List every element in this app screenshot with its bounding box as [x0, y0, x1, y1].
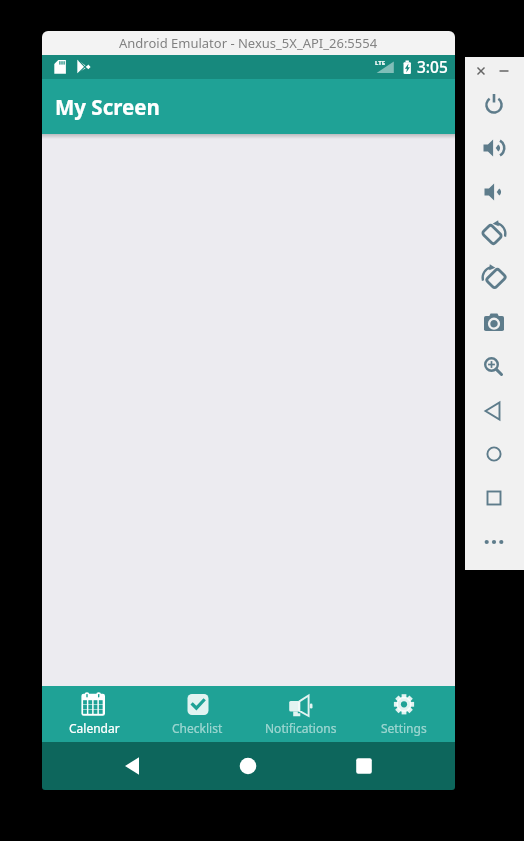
- button[interactable]: [476, 174, 512, 210]
- staticText: Calendar: [69, 720, 120, 736]
- button[interactable]: [476, 130, 512, 166]
- staticText: My Screen: [55, 93, 160, 121]
- button[interactable]: [476, 480, 512, 516]
- button[interactable]: [476, 524, 512, 560]
- button[interactable]: [340, 742, 388, 790]
- button[interactable]: [476, 393, 512, 429]
- staticText: Settings: [381, 720, 427, 736]
- button[interactable]: [108, 742, 156, 790]
- staticText: Notifications: [265, 720, 337, 736]
- staticText: LTE: [375, 59, 386, 67]
- button[interactable]: [497, 64, 511, 78]
- button[interactable]: Notifications: [249, 686, 352, 742]
- staticText: 3:05: [417, 56, 448, 77]
- button[interactable]: Settings: [352, 686, 455, 742]
- button[interactable]: [474, 64, 488, 78]
- button[interactable]: [476, 349, 512, 385]
- button[interactable]: Calendar: [42, 686, 146, 742]
- button[interactable]: [476, 261, 512, 297]
- button[interactable]: Checklist: [146, 686, 249, 742]
- button[interactable]: [476, 305, 512, 341]
- button[interactable]: [224, 742, 272, 790]
- button[interactable]: [476, 86, 512, 122]
- button[interactable]: [476, 217, 512, 253]
- staticText: Checklist: [172, 720, 223, 736]
- button[interactable]: [476, 436, 512, 472]
- staticText: Android Emulator - Nexus_5X_API_26:5554: [119, 34, 378, 52]
